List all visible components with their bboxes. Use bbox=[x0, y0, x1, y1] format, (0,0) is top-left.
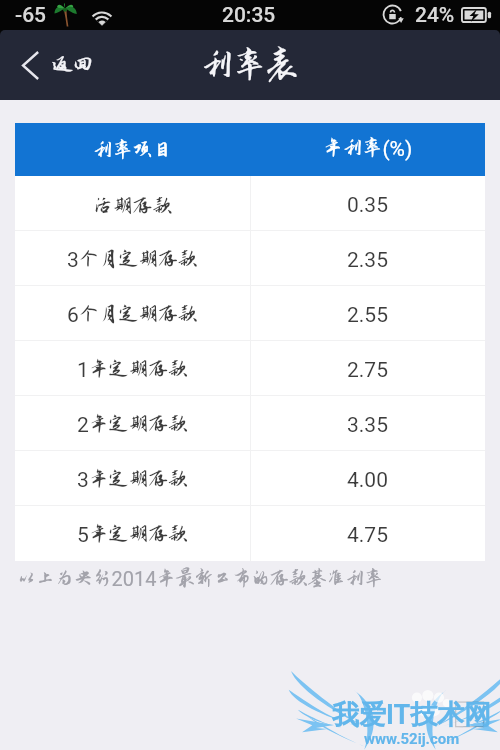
button[interactable]: 活期存款 bbox=[15, 176, 485, 231]
staticText: www.52ij.com bbox=[364, 730, 460, 748]
button[interactable]: 1年定期存款 bbox=[15, 341, 485, 396]
button[interactable]: 3年定期存款 bbox=[15, 451, 485, 506]
other: Wi-Fi bbox=[88, 6, 116, 25]
other: Palm tree bbox=[54, 3, 78, 27]
staticText: 利率项目 bbox=[93, 139, 173, 161]
staticText: 24% bbox=[415, 3, 455, 28]
staticText: 我爱IT技术网 bbox=[332, 698, 492, 732]
staticText: 0.35 bbox=[347, 193, 388, 218]
other: Battery charging bbox=[461, 7, 491, 23]
staticText: 3个月定期存款 bbox=[67, 248, 198, 273]
button[interactable]: 2年定期存款 bbox=[15, 396, 485, 451]
staticText: 4.75 bbox=[347, 523, 388, 548]
staticText: 活期存款 bbox=[93, 195, 173, 217]
staticText: 3.35 bbox=[347, 413, 388, 438]
staticText: 2.35 bbox=[347, 248, 388, 273]
staticText: 利率表 bbox=[201, 46, 299, 82]
staticText: 年利率(%) bbox=[323, 137, 413, 162]
staticText: 6个月定期存款 bbox=[67, 303, 198, 328]
staticText: 4.00 bbox=[347, 468, 388, 493]
staticText: 20:35 bbox=[222, 3, 276, 28]
staticText: 3年定期存款 bbox=[77, 468, 188, 493]
other: Rotation lock bbox=[382, 3, 407, 28]
staticText: -65 bbox=[15, 3, 47, 28]
button[interactable]: 3个月定期存款 bbox=[15, 231, 485, 286]
staticText: 以上为央行2014年最新公布的存款基准利率 bbox=[17, 567, 384, 590]
button[interactable]: 6个月定期存款 bbox=[15, 286, 485, 341]
staticText: 2.55 bbox=[347, 303, 388, 328]
staticText: 返回 bbox=[52, 53, 94, 76]
staticText: 2年定期存款 bbox=[77, 413, 188, 438]
staticText: 5年定期存款 bbox=[77, 523, 188, 548]
button[interactable]: 返回 bbox=[0, 40, 110, 91]
staticText: 1年定期存款 bbox=[77, 358, 188, 383]
button[interactable]: 5年定期存款 bbox=[15, 506, 485, 561]
staticText: 2.75 bbox=[347, 358, 388, 383]
